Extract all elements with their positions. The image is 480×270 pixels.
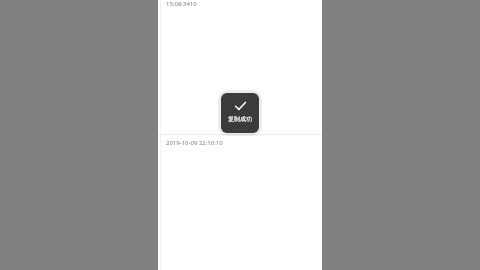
staticText: 15:08:3410 <box>166 0 197 8</box>
button[interactable]: 15:08:3410 <box>158 0 322 134</box>
staticText: 2019-10-09 22:10:10 <box>166 139 223 147</box>
button[interactable]: 2019-10-09 22:10:10 <box>158 135 322 270</box>
staticText: 复制成功 <box>221 115 259 123</box>
button[interactable]: 操作成功 <box>221 93 259 133</box>
